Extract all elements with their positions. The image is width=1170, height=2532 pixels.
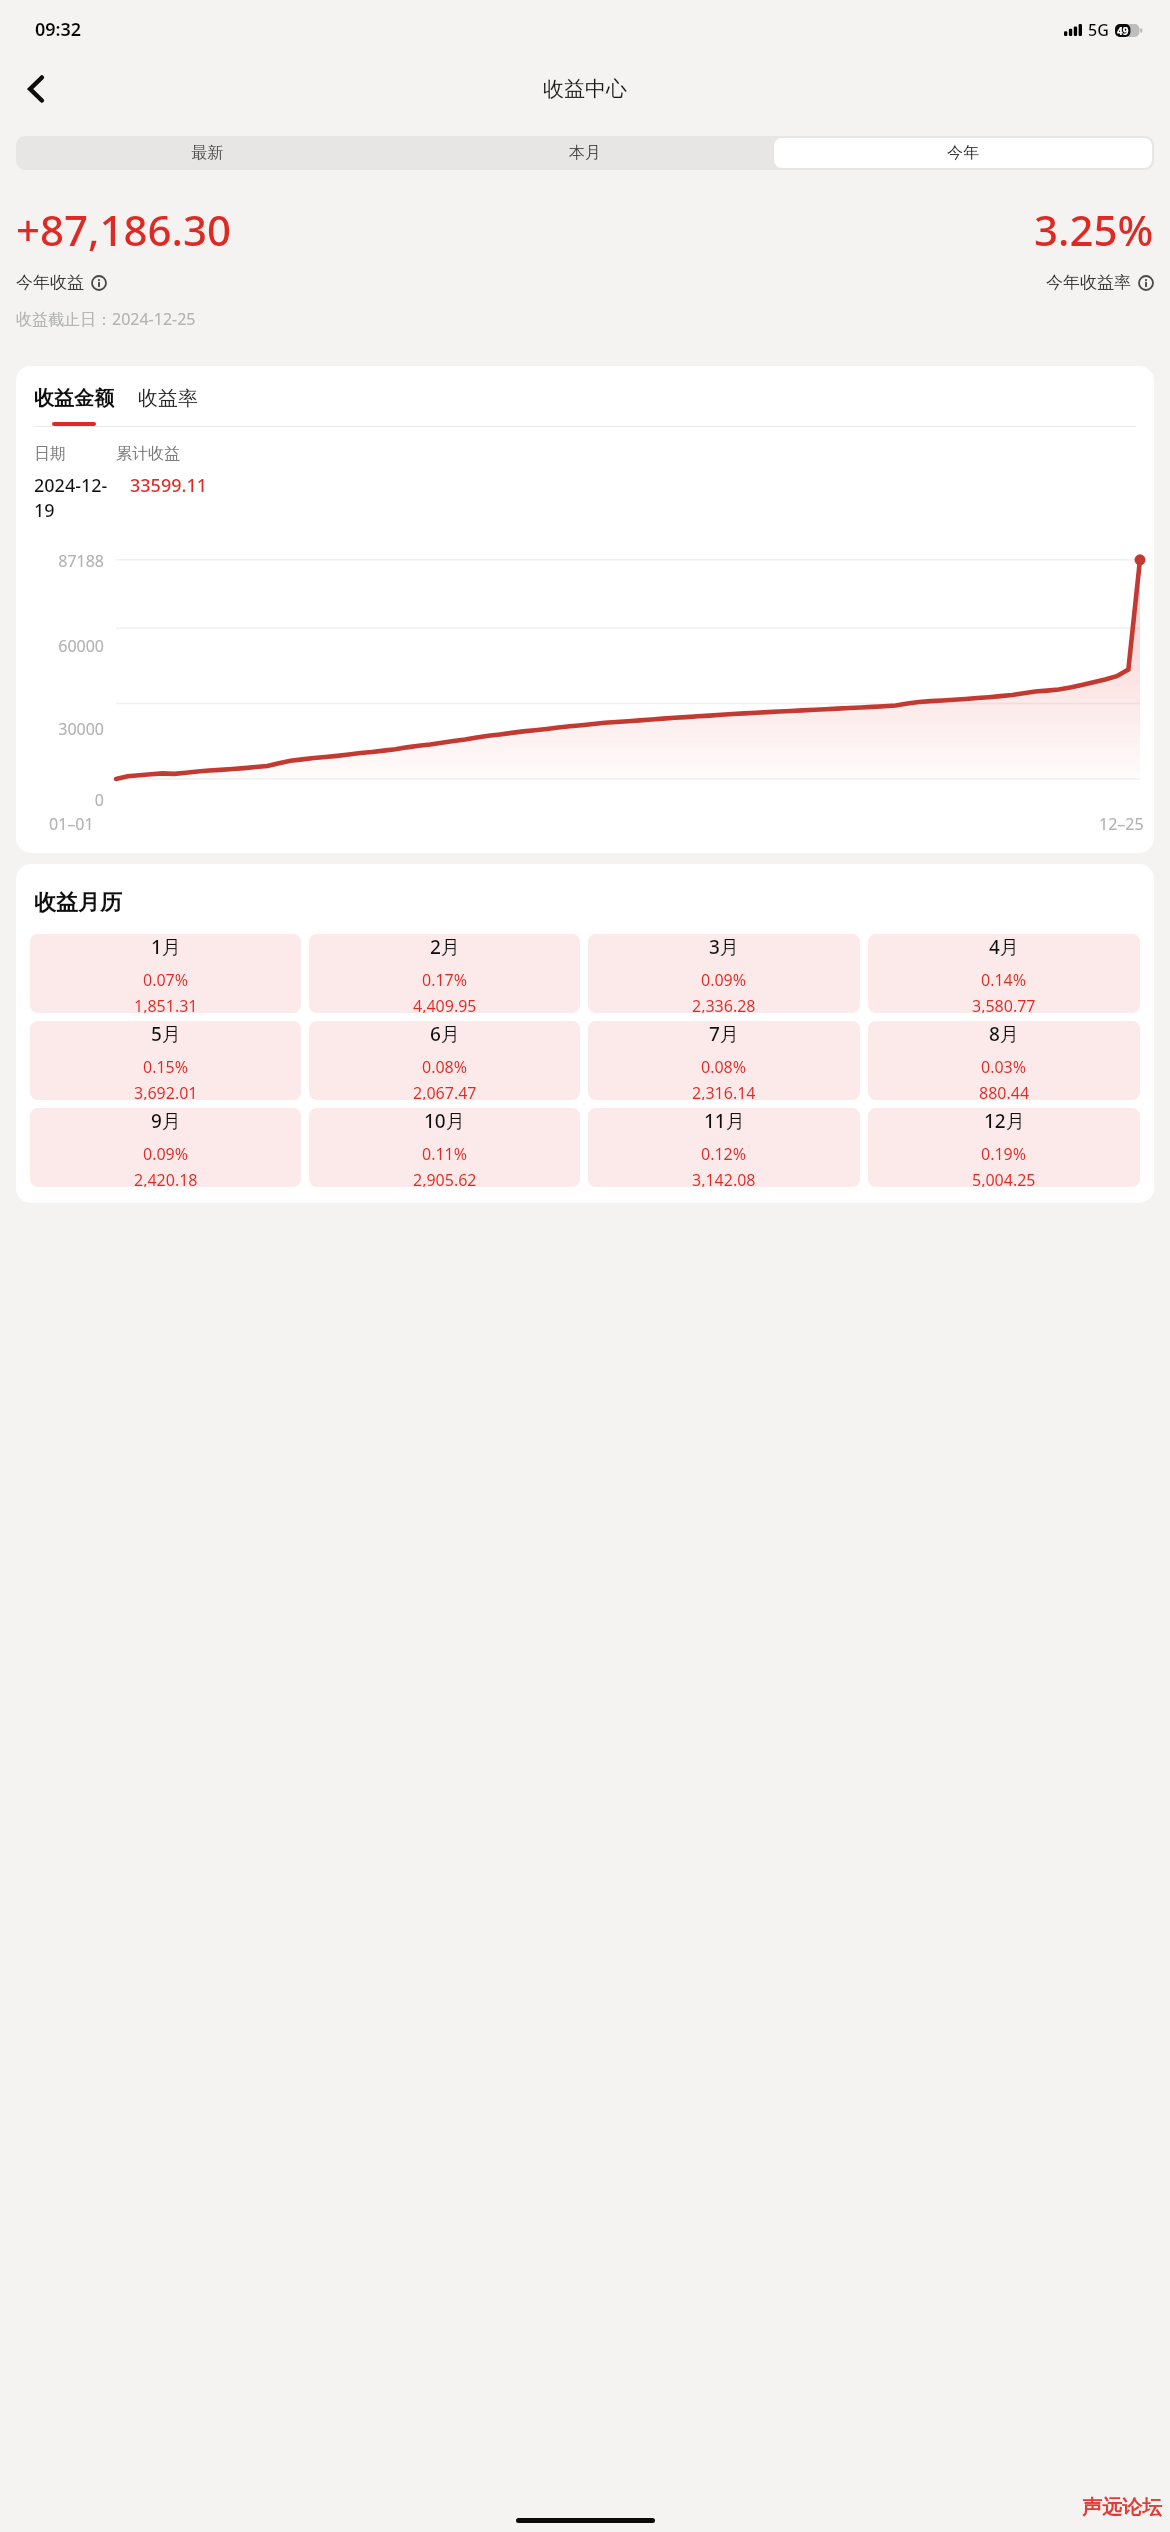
button[interactable]: 3月	[588, 934, 860, 1013]
staticText: 2,336.28	[692, 995, 756, 1013]
staticText: 1月	[151, 934, 181, 960]
staticText: 3,580.77	[972, 995, 1036, 1013]
staticText: 0.07%	[143, 969, 189, 991]
staticText: 10月	[424, 1108, 465, 1134]
staticText: 0.08%	[701, 1056, 747, 1078]
staticText: 5,004.25	[972, 1169, 1036, 1187]
staticText: 880.44	[979, 1082, 1030, 1100]
button[interactable]: 今年	[774, 138, 1152, 168]
staticText: 累计收益	[116, 444, 180, 464]
staticText: 7月	[709, 1021, 739, 1047]
staticText: 6月	[430, 1021, 460, 1047]
staticText: 收益截止日：2024-12-25	[16, 308, 196, 330]
button[interactable]: 9月	[30, 1108, 301, 1187]
staticText: 今年收益率	[1046, 272, 1131, 293]
staticText: 4,409.95	[413, 995, 477, 1013]
staticText: 0.14%	[981, 969, 1027, 991]
staticText: +87,186.30	[16, 201, 1034, 258]
staticText: 本月	[569, 143, 601, 163]
staticText: 收益中心	[543, 76, 627, 102]
button[interactable]: 6月	[309, 1021, 580, 1100]
staticText: 5月	[151, 1021, 181, 1047]
staticText: 3.25%	[1034, 201, 1154, 258]
staticText: 收益月历	[34, 889, 122, 917]
staticText: 33599.11	[130, 473, 207, 498]
staticText: 日期	[34, 444, 66, 464]
button[interactable]: 7月	[588, 1021, 860, 1100]
staticText: 4月	[989, 934, 1019, 960]
staticText: 01–01	[49, 813, 94, 835]
button[interactable]: 今年收益率	[1046, 272, 1154, 293]
staticText: 1,851.31	[134, 995, 198, 1013]
staticText: 收益率	[138, 386, 198, 411]
staticText: 0	[16, 789, 104, 811]
button[interactable]: 收益金额	[34, 386, 114, 411]
staticText: 2,905.62	[413, 1169, 477, 1187]
button[interactable]: 8月	[868, 1021, 1140, 1100]
staticText: 87188	[16, 550, 104, 572]
button[interactable]: 11月	[588, 1108, 860, 1187]
button[interactable]: 今年收益	[16, 272, 1046, 293]
staticText: 0.19%	[981, 1143, 1027, 1165]
button[interactable]: 1月	[30, 934, 301, 1013]
button[interactable]: 12月	[868, 1108, 1140, 1187]
staticText: 60000	[16, 635, 104, 657]
staticText: 2月	[430, 934, 460, 960]
staticText: 3,692.01	[134, 1082, 198, 1100]
staticText: 09:32	[35, 17, 82, 42]
button[interactable]: 本月	[396, 138, 774, 168]
staticText: 0.03%	[981, 1056, 1027, 1078]
staticText: 0.09%	[701, 969, 747, 991]
staticText: 0.12%	[701, 1143, 747, 1165]
staticText: 声远论坛	[1082, 2495, 1162, 2520]
staticText: 12–25	[1099, 813, 1144, 835]
staticText: 2024-12-19	[34, 473, 116, 523]
button[interactable]: 4月	[868, 934, 1140, 1013]
button[interactable]: 最新	[18, 138, 396, 168]
staticText: 0.08%	[422, 1056, 468, 1078]
staticText: 8月	[989, 1021, 1019, 1047]
staticText: 3,142.08	[692, 1169, 756, 1187]
staticText: 30000	[16, 718, 104, 740]
staticText: 今年	[947, 143, 979, 163]
staticText: 最新	[191, 143, 223, 163]
staticText: 12月	[984, 1108, 1025, 1134]
staticText: 11月	[704, 1108, 745, 1134]
staticText: 9月	[151, 1108, 181, 1134]
staticText: 49	[1117, 24, 1129, 37]
button[interactable]: 10月	[309, 1108, 580, 1187]
staticText: 今年收益	[16, 272, 84, 293]
button[interactable]: 5月	[30, 1021, 301, 1100]
staticText: 0.09%	[143, 1143, 189, 1165]
staticText: 0.17%	[422, 969, 468, 991]
staticText: 收益金额	[34, 386, 114, 411]
staticText: 2,316.14	[692, 1082, 756, 1100]
button[interactable]: 2月	[309, 934, 580, 1013]
staticText: 2,067.47	[413, 1082, 477, 1100]
staticText: 2,420.18	[134, 1169, 198, 1187]
staticText: 5G	[1088, 19, 1109, 41]
staticText: 3月	[709, 934, 739, 960]
button[interactable]: 收益率	[138, 386, 198, 411]
staticText: 0.11%	[422, 1143, 468, 1165]
button[interactable]: Back	[8, 61, 64, 117]
staticText: 0.15%	[143, 1056, 189, 1078]
